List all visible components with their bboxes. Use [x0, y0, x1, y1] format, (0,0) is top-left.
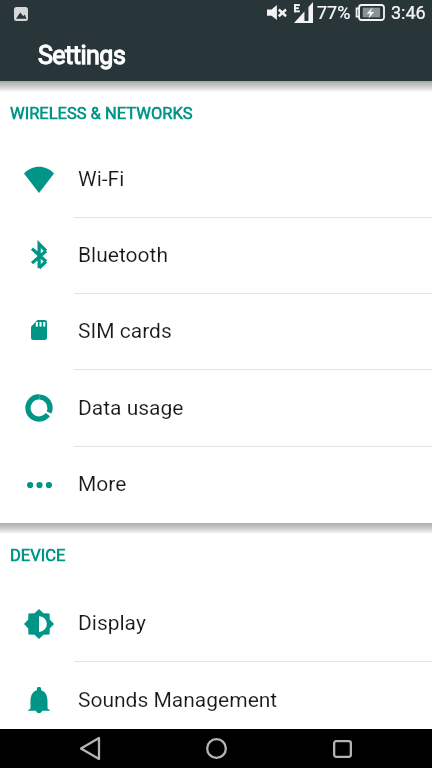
staticText: Data usage	[78, 396, 184, 421]
staticText: 77%	[317, 2, 351, 23]
staticText: Bluetooth	[78, 243, 168, 268]
staticText: Settings	[38, 41, 126, 70]
other: Screenshot	[14, 7, 28, 21]
button[interactable]: Sounds Management	[0, 662, 432, 739]
staticText: WIRELESS & NETWORKS	[10, 104, 193, 123]
button[interactable]: Bluetooth	[0, 217, 432, 294]
staticText: Wi-Fi	[78, 167, 125, 192]
staticText: More	[78, 472, 127, 497]
button[interactable]: Data usage	[0, 370, 432, 447]
staticText: SIM cards	[78, 319, 172, 344]
staticText: Display	[78, 611, 146, 636]
button[interactable]: Recent apps	[297, 729, 387, 768]
button[interactable]: SIM cards	[0, 293, 432, 370]
button[interactable]: Back	[45, 729, 135, 768]
staticText: 3:46	[391, 2, 426, 23]
staticText: Sounds Management	[78, 688, 278, 713]
button[interactable]: Wi-Fi	[0, 141, 432, 218]
button[interactable]: More	[0, 446, 432, 523]
button[interactable]: Home	[171, 729, 261, 768]
button[interactable]: Display	[0, 585, 432, 662]
staticText: DEVICE	[10, 546, 66, 565]
